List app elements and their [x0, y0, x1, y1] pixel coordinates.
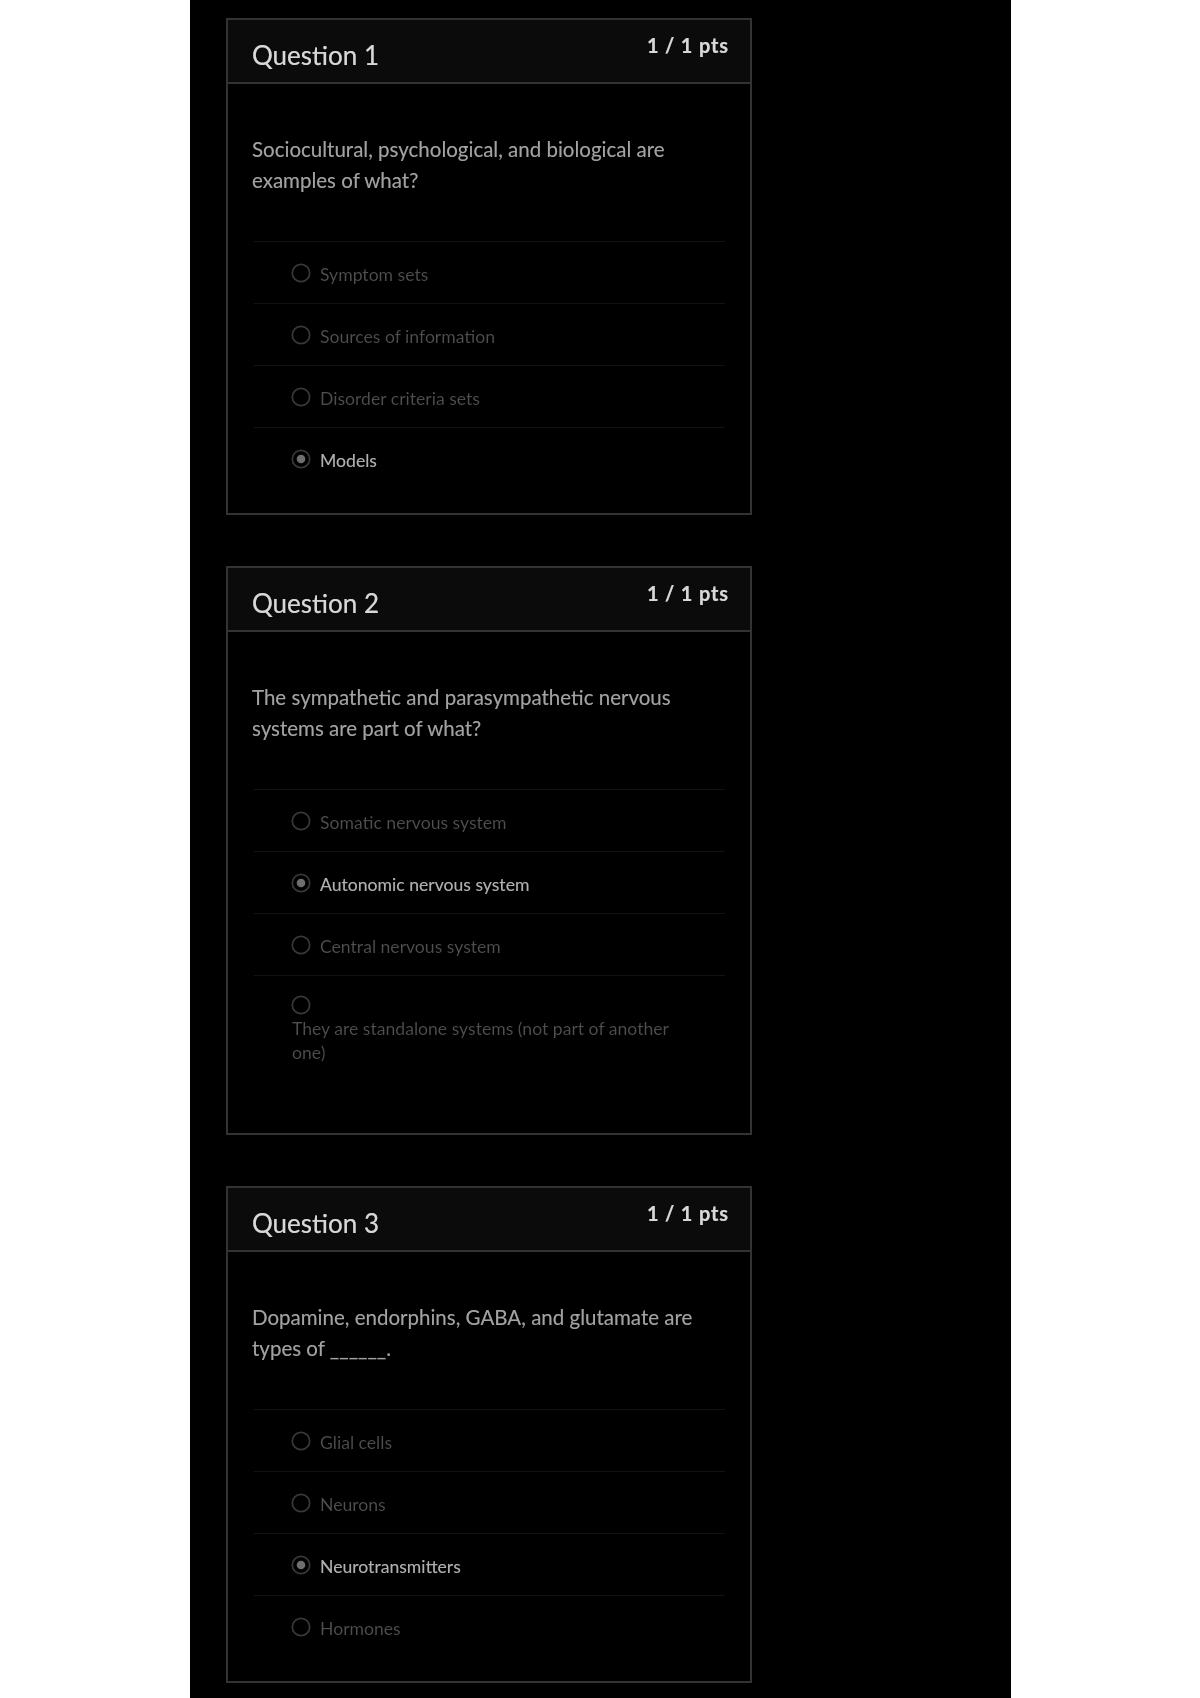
- staticText: Disorder criteria sets: [320, 385, 480, 409]
- button[interactable]: Somatic nervous system: [226, 790, 752, 851]
- staticText: Sources of information: [320, 323, 495, 347]
- staticText: Question 2: [252, 587, 380, 618]
- staticText: Hormones: [320, 1615, 401, 1639]
- button[interactable]: Models, selected answer: [226, 428, 752, 489]
- staticText: Autonomic nervous system: [320, 871, 530, 895]
- button[interactable]: Sources of information: [226, 304, 752, 365]
- staticText: Neurotransmitters: [320, 1553, 461, 1577]
- staticText: Question 3: [252, 1207, 380, 1238]
- button[interactable]: Glial cells: [226, 1410, 752, 1471]
- staticText: Models: [320, 447, 377, 471]
- staticText: 1 / 1 pts: [647, 1201, 729, 1225]
- staticText: 1 / 1 pts: [647, 33, 729, 57]
- button[interactable]: Question 3: [226, 1186, 752, 1250]
- staticText: 1 / 1 pts: [647, 581, 729, 605]
- staticText: Central nervous system: [320, 933, 501, 957]
- button[interactable]: Neurotransmitters, selected answer: [226, 1534, 752, 1595]
- button[interactable]: Question 1: [226, 18, 752, 82]
- button[interactable]: Disorder criteria sets: [226, 366, 752, 427]
- button[interactable]: Symptom sets: [226, 242, 752, 303]
- button[interactable]: Hormones: [226, 1596, 752, 1657]
- staticText: Somatic nervous system: [320, 809, 507, 833]
- staticText: The sympathetic and parasympathetic nerv…: [252, 679, 722, 741]
- staticText: Sociocultural, psychological, and biolog…: [252, 131, 722, 193]
- staticText: Neurons: [320, 1491, 386, 1515]
- button[interactable]: Neurons: [226, 1472, 752, 1533]
- button[interactable]: Question 2: [226, 566, 752, 630]
- button[interactable]: Central nervous system: [226, 914, 752, 975]
- staticText: They are standalone systems (not part of…: [292, 1015, 684, 1063]
- staticText: Glial cells: [320, 1429, 393, 1453]
- staticText: Question 1: [252, 39, 380, 70]
- button[interactable]: They are standalone systems (not part of…: [226, 976, 752, 1109]
- staticText: Symptom sets: [320, 261, 429, 285]
- staticText: Dopamine, endorphins, GABA, and glutamat…: [252, 1299, 722, 1361]
- button[interactable]: Autonomic nervous system, selected answe…: [226, 852, 752, 913]
